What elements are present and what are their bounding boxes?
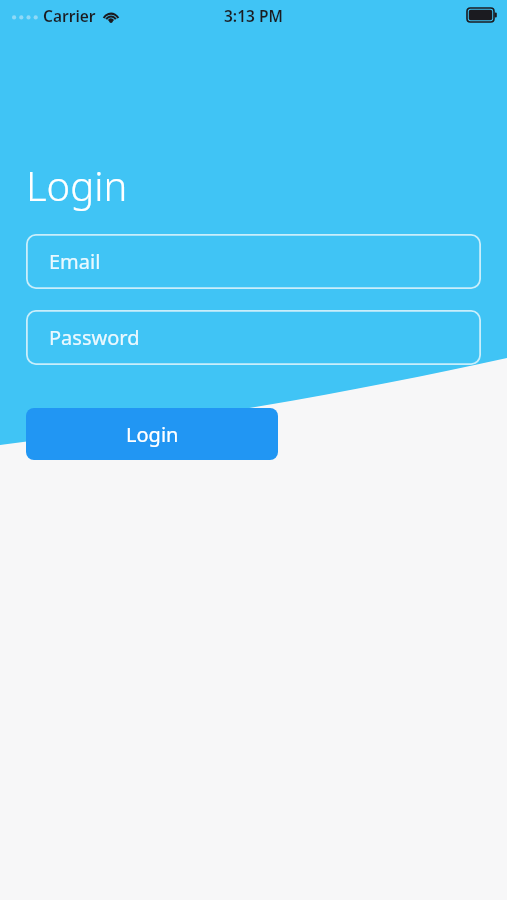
staticText: Password [49,324,140,351]
button[interactable]: Login [26,408,278,460]
button[interactable]: Password [26,310,481,365]
staticText: Login [126,421,179,448]
button[interactable]: Email [26,234,481,289]
staticText: Carrier [43,5,96,26]
staticText: Email [49,248,101,275]
staticText: 3:13 PM [224,5,283,26]
staticText: Login [26,158,128,212]
